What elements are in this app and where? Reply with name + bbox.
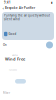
staticText: Good	[8, 32, 16, 36]
staticText: ‹	[2, 5, 3, 11]
staticText: silent wind	[4, 17, 20, 21]
staticText: Wind Free	[5, 56, 25, 61]
staticText: Wind free	[12, 54, 18, 56]
button[interactable]: Power	[46, 41, 53, 48]
button[interactable]: Mode	[15, 79, 26, 84]
staticText: ▮	[51, 1, 52, 4]
staticText: Purifying the air quietly without	[4, 14, 50, 17]
staticText: Filter	[3, 91, 10, 95]
staticText: Bespoke Air Purifier	[5, 6, 35, 10]
staticText: On	[3, 43, 7, 47]
button[interactable]: Back	[1, 5, 4, 11]
staticText: 9:41	[4, 1, 11, 4]
